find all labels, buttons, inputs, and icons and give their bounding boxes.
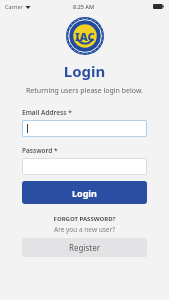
staticText: Carrier (5, 3, 23, 10)
staticText: Returning users please login below. (0, 86, 169, 96)
button[interactable]: FORGOT PASSWORD? (22, 215, 147, 223)
staticText: IAC (75, 29, 95, 44)
staticText: 8:25 AM (73, 3, 95, 10)
other: IAC logo (66, 17, 104, 55)
button[interactable]: Register (22, 238, 147, 257)
staticText: Are you a new user? (22, 225, 147, 234)
staticText: Login (0, 61, 169, 81)
staticText: Login (72, 187, 97, 199)
staticText: Email Address * (22, 108, 72, 117)
staticText: Register (69, 242, 101, 253)
button[interactable] (22, 120, 147, 137)
button[interactable]: Login (22, 181, 147, 204)
button[interactable] (22, 158, 147, 175)
staticText: Password * (22, 146, 58, 155)
